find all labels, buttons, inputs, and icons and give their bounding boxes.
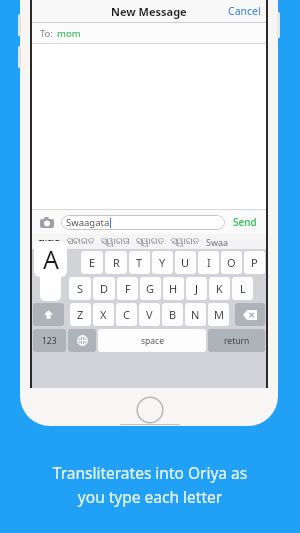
- other: Volume up: [18, 14, 21, 36]
- button[interactable]: Swaagata: [61, 215, 225, 230]
- button[interactable]: Add photo: [38, 213, 56, 231]
- staticText: V: [146, 307, 153, 322]
- button[interactable]: N: [185, 303, 206, 326]
- staticText: C: [123, 307, 130, 322]
- staticText: M: [214, 307, 224, 322]
- button[interactable]: G: [140, 277, 161, 300]
- button[interactable]: V: [139, 303, 160, 326]
- staticText: P: [251, 255, 258, 270]
- button[interactable]: O: [221, 251, 242, 274]
- button[interactable]: E: [81, 251, 103, 274]
- button[interactable]: C: [116, 303, 137, 326]
- button[interactable]: To:: [31, 23, 267, 43]
- button[interactable]: L: [232, 277, 253, 300]
- staticText: U: [181, 255, 190, 270]
- staticText: Transliterates into Oriya as: [0, 462, 300, 483]
- staticText: K: [216, 281, 223, 296]
- staticText: Swaagata: [66, 216, 110, 229]
- staticText: E: [89, 255, 96, 270]
- staticText: F: [125, 281, 131, 296]
- button[interactable]: Shift: [33, 303, 64, 326]
- staticText: D: [100, 281, 109, 296]
- staticText: B: [169, 307, 177, 322]
- staticText: Cancel: [228, 4, 261, 18]
- button[interactable]: R: [105, 251, 127, 274]
- staticText: X: [100, 307, 107, 322]
- staticText: ସ୍ୱାଗତ: [38, 236, 61, 248]
- staticText: N: [191, 307, 200, 322]
- staticText: To:: [40, 27, 53, 40]
- staticText: mom: [57, 27, 81, 40]
- button[interactable]: T: [129, 251, 150, 274]
- button[interactable]: ସ୍ୱାଗତ: [35, 236, 64, 248]
- staticText: A: [43, 242, 59, 276]
- button[interactable]: I: [198, 251, 219, 274]
- button[interactable]: J: [186, 277, 207, 300]
- button[interactable]: B: [162, 303, 183, 326]
- button[interactable]: Y: [152, 251, 173, 274]
- staticText: T: [136, 255, 143, 270]
- button[interactable]: ସ୍ୱାଗତ: [133, 237, 168, 246]
- staticText: Swaa: [206, 236, 229, 248]
- staticText: New Message: [111, 4, 187, 19]
- button[interactable]: H: [163, 277, 184, 300]
- staticText: you type each letter: [0, 486, 300, 507]
- staticText: ସବାଗତ: [67, 237, 95, 246]
- button[interactable]: Backspace: [235, 303, 265, 326]
- button[interactable]: Home: [136, 396, 164, 424]
- staticText: 123: [42, 335, 57, 347]
- staticText: return: [224, 335, 250, 347]
- staticText: I: [207, 255, 211, 270]
- button[interactable]: S: [69, 277, 91, 300]
- button[interactable]: return: [208, 329, 265, 352]
- button[interactable]: Cancel: [222, 1, 267, 21]
- staticText: ସ୍ୱାଗତ: [136, 237, 165, 246]
- staticText: O: [227, 255, 236, 270]
- staticText: ସ୍ୱାଗତ: [171, 237, 200, 246]
- button[interactable]: P: [244, 251, 265, 274]
- staticText: Z: [77, 307, 84, 322]
- other: Power: [277, 12, 280, 38]
- button[interactable]: D: [93, 277, 115, 300]
- button[interactable]: ସବାଗତ: [64, 237, 98, 246]
- button[interactable]: U: [175, 251, 196, 274]
- staticText: H: [169, 281, 178, 296]
- staticText: ସ୍ୱାଗତା: [101, 237, 130, 246]
- button[interactable]: ସ୍ୱାଗତା: [98, 237, 133, 246]
- staticText: Y: [159, 255, 166, 270]
- staticText: R: [113, 255, 120, 270]
- button[interactable]: Switch keyboard: [68, 329, 96, 352]
- staticText: S: [77, 281, 84, 296]
- button[interactable]: X: [93, 303, 114, 326]
- staticText: space: [141, 335, 164, 347]
- button[interactable]: Send: [230, 213, 260, 231]
- button[interactable]: K: [209, 277, 230, 300]
- button[interactable]: ସ୍ୱାଗତ: [168, 237, 203, 246]
- button[interactable]: F: [117, 277, 138, 300]
- button[interactable]: Swaa: [203, 236, 232, 248]
- button[interactable]: M: [208, 303, 229, 326]
- staticText: J: [195, 281, 199, 296]
- staticText: Send: [233, 215, 257, 229]
- other: Volume down: [18, 46, 21, 68]
- staticText: G: [146, 281, 155, 296]
- staticText: L: [240, 281, 246, 296]
- button[interactable]: space: [98, 329, 206, 352]
- button[interactable]: 123: [33, 329, 66, 352]
- button[interactable]: Z: [70, 303, 91, 326]
